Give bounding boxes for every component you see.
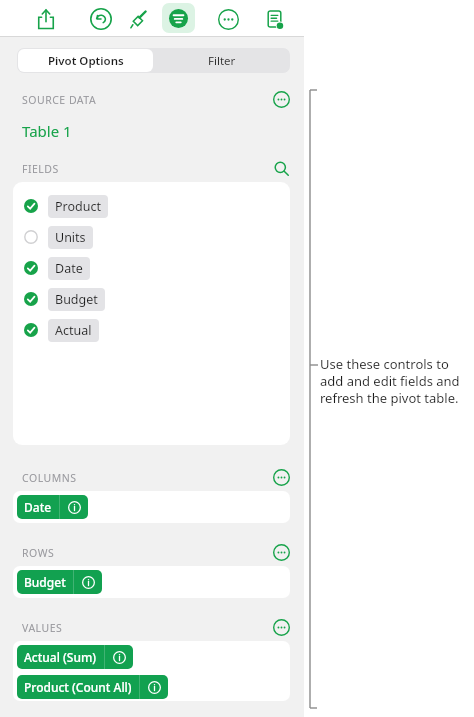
staticText: Product — [55, 198, 101, 215]
staticText: Actual (Sum) — [24, 649, 97, 665]
staticText: Product (Count All) — [24, 679, 132, 695]
button[interactable]: SOURCE DATA options — [269, 87, 293, 111]
button[interactable]: Budget — [17, 570, 102, 594]
button[interactable]: Undo — [86, 4, 116, 34]
button[interactable]: Document — [259, 4, 289, 34]
button[interactable]: More — [213, 4, 243, 34]
staticText: Pivot Options — [48, 53, 124, 69]
staticText: Units — [55, 229, 86, 246]
staticText: Budget — [55, 291, 98, 308]
staticText: Date — [55, 260, 83, 277]
button[interactable]: Filter — [154, 49, 289, 72]
button[interactable]: Pivot Options — [18, 49, 153, 72]
button[interactable]: VALUES options — [269, 615, 293, 639]
button[interactable]: Product — [13, 193, 290, 219]
button[interactable]: Product (Count All) — [17, 675, 168, 699]
staticText: Actual — [55, 322, 92, 339]
staticText: COLUMNS — [22, 471, 77, 485]
button[interactable]: Date — [13, 255, 290, 281]
button[interactable]: Actual (Sum) info — [105, 645, 133, 669]
button[interactable]: Budget — [13, 286, 290, 312]
staticText: Date — [24, 499, 52, 515]
button[interactable]: Search fields — [269, 156, 293, 180]
staticText: Budget — [24, 574, 66, 590]
staticText: Filter — [208, 53, 236, 69]
button[interactable]: Date info — [60, 495, 88, 519]
button[interactable]: Product (Count All) info — [140, 675, 168, 699]
button[interactable]: Format — [124, 4, 154, 34]
staticText: Use these controls to add and edit field… — [320, 355, 470, 407]
staticText: Table 1 — [22, 121, 72, 141]
button[interactable]: Pivot Options — [162, 3, 195, 33]
button[interactable]: Units — [13, 224, 290, 250]
button[interactable]: Date — [17, 495, 88, 519]
button[interactable]: Actual — [13, 317, 290, 343]
staticText: SOURCE DATA — [22, 93, 97, 107]
button[interactable]: Share — [31, 4, 61, 34]
button[interactable]: COLUMNS options — [269, 465, 293, 489]
staticText: ROWS — [22, 546, 55, 560]
staticText: FIELDS — [22, 162, 59, 176]
button[interactable]: ROWS options — [269, 540, 293, 564]
staticText: VALUES — [22, 621, 63, 635]
button[interactable]: Actual (Sum) — [17, 645, 133, 669]
button[interactable]: Budget info — [74, 570, 102, 594]
